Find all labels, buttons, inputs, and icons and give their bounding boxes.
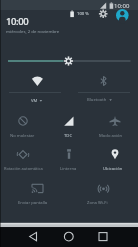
button[interactable] xyxy=(92,140,138,174)
button[interactable] xyxy=(0,140,46,174)
staticText: Zona Wi-Fi xyxy=(87,200,108,206)
staticText: Modo avión xyxy=(99,133,123,139)
staticText: Bluetooth xyxy=(87,97,107,103)
button[interactable] xyxy=(46,103,92,140)
staticText: 10:00 xyxy=(6,15,29,28)
staticText: miércoles, 2 de noviembre xyxy=(6,28,60,34)
staticText: No molestar xyxy=(10,133,35,139)
button[interactable] xyxy=(69,174,138,207)
button[interactable] xyxy=(96,7,110,21)
staticText: Enviar pantalla xyxy=(18,200,48,206)
button[interactable] xyxy=(52,227,85,247)
button[interactable] xyxy=(87,227,120,247)
button[interactable] xyxy=(0,174,69,207)
staticText: 10:00 xyxy=(114,2,130,10)
staticText: Rotación automática xyxy=(4,166,43,171)
button[interactable] xyxy=(92,103,138,140)
button[interactable] xyxy=(18,227,50,247)
staticText: VM xyxy=(31,98,38,104)
staticText: Ubicación xyxy=(103,166,123,172)
staticText: 100 % xyxy=(77,11,89,17)
button[interactable] xyxy=(0,103,46,140)
button[interactable] xyxy=(0,70,69,103)
button[interactable] xyxy=(114,7,131,23)
button[interactable] xyxy=(69,70,138,103)
staticText: TDC xyxy=(64,133,73,139)
staticText: Linterna xyxy=(60,166,77,172)
button[interactable] xyxy=(0,50,138,70)
button[interactable] xyxy=(46,140,92,174)
